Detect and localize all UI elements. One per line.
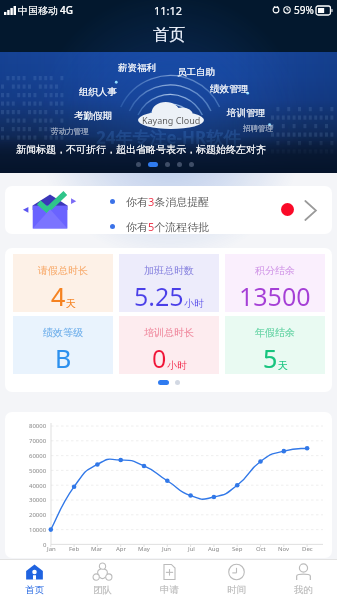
staticText: 40000: [29, 482, 47, 490]
staticText: 我的: [294, 584, 313, 596]
staticText: May: [138, 545, 150, 553]
staticText: 50000: [29, 467, 47, 475]
staticText: Kayang Cloud: [142, 114, 201, 126]
staticText: 新闻标题，不可折行，超出省略号表示，标题始终左对齐: [16, 143, 266, 156]
staticText: 绩效管理: [210, 83, 248, 95]
staticText: Sep: [232, 545, 243, 553]
staticText: Feb: [69, 545, 80, 553]
staticText: 申请: [160, 584, 179, 596]
staticText: 培训总时长: [144, 326, 194, 339]
button[interactable]: 加班总时数: [119, 254, 219, 312]
staticText: Apr: [116, 545, 127, 553]
button[interactable]: 请假总时长: [13, 254, 113, 312]
staticText: 你有5个流程待批: [126, 219, 210, 234]
button[interactable]: 培训总时长: [119, 316, 219, 374]
staticText: 4: [51, 279, 66, 313]
button[interactable]: 绩效等级: [13, 316, 113, 374]
staticText: 天: [278, 359, 288, 372]
staticText: 59%: [294, 3, 314, 17]
staticText: 0: [43, 541, 47, 549]
staticText: 劳动力管理: [51, 127, 89, 136]
staticText: Mar: [91, 545, 103, 553]
staticText: Oct: [256, 545, 266, 553]
staticText: 绩效等级: [43, 326, 83, 339]
staticText: 招聘管理: [243, 124, 273, 133]
staticText: Jan: [47, 545, 56, 553]
button[interactable]: 你有3条消息提醒: [5, 186, 332, 234]
staticText: Dec: [302, 545, 313, 553]
staticText: 加班总时数: [144, 264, 194, 277]
staticText: 薪资福利: [118, 62, 156, 74]
staticText: Nov: [278, 545, 290, 553]
button[interactable]: 积分结余: [225, 254, 325, 312]
staticText: 24年专注e-HR软件: [96, 126, 241, 149]
staticText: 10000: [29, 526, 47, 534]
staticText: 30000: [29, 496, 47, 504]
staticText: 首页: [153, 25, 185, 45]
button[interactable]: 首页: [0, 559, 68, 600]
staticText: B: [55, 341, 72, 375]
staticText: 首页: [25, 584, 44, 596]
button[interactable]: 申请: [136, 559, 203, 600]
staticText: 小时: [184, 297, 204, 310]
staticText: 20000: [29, 511, 47, 519]
staticText: 13500: [239, 279, 311, 313]
staticText: 70000: [29, 437, 47, 445]
staticText: Aug: [208, 545, 220, 553]
staticText: 考勤假期: [74, 110, 112, 122]
staticText: 60000: [29, 452, 47, 460]
staticText: 请假总时长: [38, 264, 88, 277]
staticText: 中国移动: [18, 4, 58, 17]
staticText: 5: [263, 341, 278, 375]
staticText: 员工自助: [177, 66, 215, 78]
staticText: 小时: [167, 359, 187, 372]
button[interactable]: 团队: [68, 559, 136, 600]
button[interactable]: 年假结余: [225, 316, 325, 374]
staticText: 积分结余: [255, 264, 295, 277]
staticText: 团队: [93, 584, 112, 596]
button[interactable]: 我的: [270, 559, 337, 600]
staticText: Jul: [188, 545, 195, 553]
staticText: 天: [66, 297, 76, 310]
staticText: 你有3条消息提醒: [126, 194, 210, 209]
staticText: 80000: [29, 422, 47, 430]
staticText: 0: [152, 341, 167, 375]
staticText: 5.25: [134, 279, 184, 313]
staticText: 年假结余: [255, 326, 295, 339]
staticText: 11:12: [154, 3, 183, 18]
staticText: 培训管理: [227, 107, 265, 119]
staticText: 组织人事: [79, 86, 117, 98]
staticText: 时间: [227, 584, 246, 596]
button[interactable]: 时间: [203, 559, 270, 600]
staticText: Jun: [162, 545, 172, 553]
staticText: 4G: [60, 3, 73, 17]
